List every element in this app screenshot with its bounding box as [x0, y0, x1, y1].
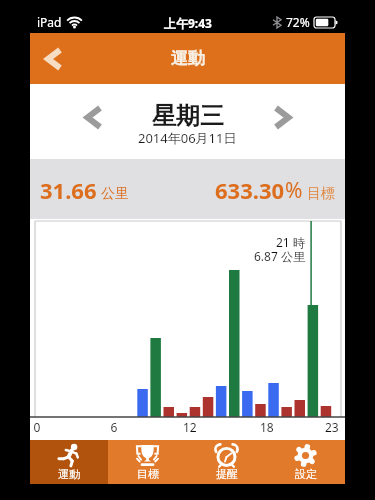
staticText: 目標 — [307, 185, 335, 203]
button[interactable] — [74, 99, 110, 135]
staticText: 公里 — [101, 185, 129, 203]
button[interactable]: 提醒 — [187, 440, 266, 484]
staticText: % — [285, 176, 303, 205]
button[interactable]: 設定 — [266, 440, 345, 484]
staticText: 633.30 — [215, 175, 285, 205]
button[interactable] — [265, 99, 301, 135]
staticText: 2014年06月11日 — [138, 129, 237, 147]
staticText: 星期三 — [152, 101, 224, 131]
staticText: 提醒 — [216, 467, 238, 481]
staticText: 運動 — [58, 467, 80, 481]
button[interactable]: 運動 — [30, 440, 108, 484]
staticText: 運動 — [171, 48, 205, 69]
staticText: 上午9:43 — [164, 15, 212, 31]
staticText: 設定 — [295, 467, 317, 481]
staticText: iPad — [37, 14, 62, 30]
button[interactable]: 目標 — [108, 440, 187, 484]
button[interactable] — [36, 42, 70, 76]
staticText: 目標 — [137, 467, 159, 481]
staticText: 72% — [286, 14, 310, 30]
staticText: 31.66 — [40, 175, 97, 205]
